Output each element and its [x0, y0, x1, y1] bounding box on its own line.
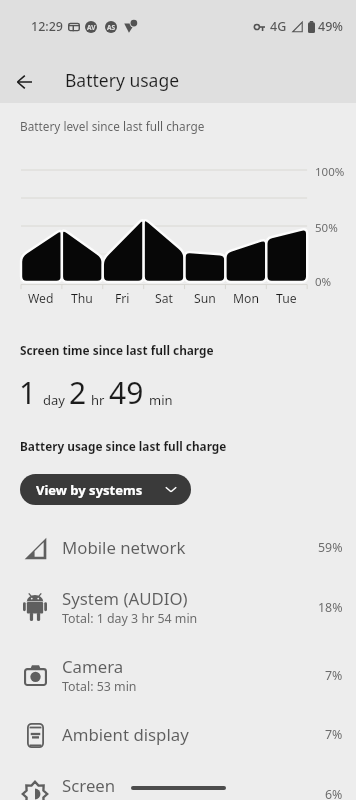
staticText: 100%	[315, 164, 345, 180]
staticText: 49	[109, 372, 144, 413]
button[interactable]: Ambient display	[0, 709, 356, 760]
staticText: 1	[19, 372, 37, 413]
button[interactable]: Camera	[0, 641, 356, 709]
staticText: 7%	[325, 667, 343, 684]
button[interactable]: Screen	[0, 760, 356, 800]
staticText: 18%	[318, 599, 343, 616]
staticText: 12:29	[31, 18, 64, 35]
staticText: Total: 53 min	[62, 678, 137, 695]
staticText: 59%	[318, 539, 343, 556]
staticText: Mon	[233, 290, 259, 307]
staticText: Tue	[276, 290, 297, 307]
button[interactable]: View by systems	[20, 474, 191, 505]
button[interactable]: Mobile network	[0, 522, 356, 573]
button[interactable]: Back	[6, 64, 42, 100]
staticText: AS	[107, 23, 116, 32]
staticText: Ambient display	[62, 723, 189, 746]
staticText: 4G	[270, 18, 287, 35]
staticText: View by systems	[36, 481, 143, 499]
staticText: hr	[91, 391, 105, 409]
staticText: Total: 1 day 3 hr 54 min	[62, 610, 198, 627]
staticText: Screen time since last full charge	[20, 342, 214, 358]
staticText: Mobile network	[62, 536, 186, 559]
staticText: Battery usage	[65, 68, 180, 92]
staticText: 2	[69, 372, 87, 413]
staticText: Thu	[71, 290, 93, 307]
staticText: AV	[87, 23, 96, 32]
staticText: System (AUDIO)	[62, 587, 188, 610]
staticText: Sun	[194, 290, 216, 307]
staticText: Camera	[62, 655, 124, 678]
button[interactable]: System (AUDIO)	[0, 573, 356, 641]
staticText: Screen	[62, 774, 116, 797]
staticText: 7%	[325, 726, 343, 743]
staticText: 6%	[325, 786, 343, 800]
staticText: Battery level since last full charge	[20, 118, 205, 134]
staticText: Battery usage since last full charge	[20, 438, 227, 454]
staticText: Wed	[28, 290, 54, 307]
staticText: day	[43, 391, 65, 409]
staticText: min	[149, 391, 173, 409]
staticText: Sat	[155, 290, 173, 307]
staticText: 49%	[318, 18, 343, 35]
staticText: Fri	[115, 290, 130, 307]
staticText: 50%	[315, 220, 338, 236]
staticText: 0%	[315, 274, 332, 290]
